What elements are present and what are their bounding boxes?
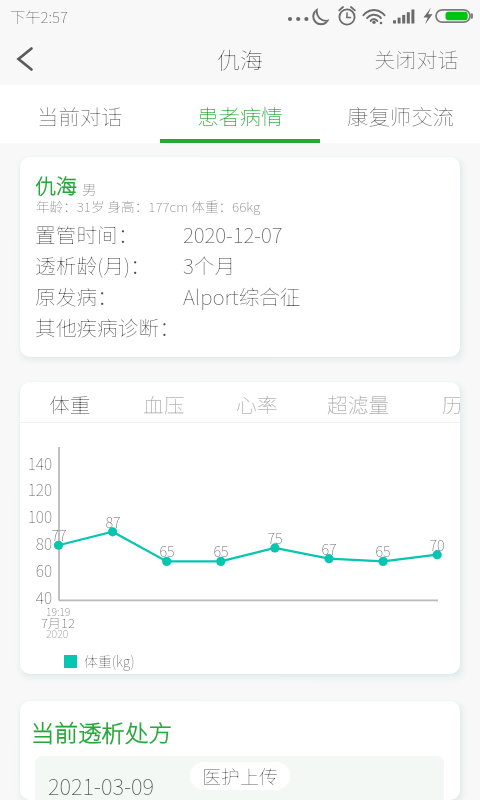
staticText: 2020-12-07 xyxy=(183,219,283,249)
button[interactable]: 医护上传 xyxy=(190,762,290,790)
staticText: 7月12 xyxy=(41,613,75,632)
staticText: 年龄：31岁 身高：177cm 体重：66kg xyxy=(36,196,261,216)
staticText: 19:19 xyxy=(46,604,71,619)
staticText: 3个月 xyxy=(183,250,236,280)
staticText: 140 xyxy=(20,452,52,474)
staticText: 2021-03-09 xyxy=(48,769,154,800)
staticText: 体重 xyxy=(49,389,91,419)
staticText: 87 xyxy=(100,511,126,532)
staticText: 80 xyxy=(20,532,52,554)
button[interactable]: 患者病情 xyxy=(160,85,320,143)
staticText: 其他疾病诊断： xyxy=(35,312,180,342)
staticText: 超滤量 xyxy=(327,389,390,419)
staticText: 67 xyxy=(316,538,342,559)
staticText: 体重(kg) xyxy=(84,651,135,671)
staticText: 70 xyxy=(424,534,450,555)
staticText: 康复师交流 xyxy=(347,100,454,131)
staticText: 2020 xyxy=(46,626,69,641)
staticText: 当前透析处方 xyxy=(31,715,172,749)
staticText: Alport综合征 xyxy=(183,281,301,311)
staticText: 40 xyxy=(20,586,52,608)
staticText: 心率 xyxy=(236,389,278,419)
staticText: 65 xyxy=(154,540,180,561)
staticText: 120 xyxy=(20,478,52,500)
staticText: 血压 xyxy=(143,389,185,419)
staticText: 医护上传 xyxy=(202,762,279,790)
staticText: 77 xyxy=(46,524,72,545)
button[interactable]: Back xyxy=(0,32,50,85)
staticText: 原发病： xyxy=(35,281,118,311)
button[interactable]: 当前对话 xyxy=(0,85,160,143)
button[interactable]: 关闭对话 xyxy=(360,32,480,85)
staticText: 60 xyxy=(20,559,52,581)
staticText: 患者病情 xyxy=(197,100,283,131)
staticText: 仇海 xyxy=(35,170,77,200)
staticText: 透析龄(月)： xyxy=(35,250,151,280)
staticText: 75 xyxy=(262,527,288,548)
staticText: 置管时间： xyxy=(35,219,139,249)
staticText: 男 xyxy=(82,178,97,199)
staticText: 当前对话 xyxy=(37,100,123,131)
staticText: 65 xyxy=(208,540,234,561)
staticText: 下午2:57 xyxy=(10,5,69,27)
button[interactable]: 康复师交流 xyxy=(320,85,480,143)
staticText: 100 xyxy=(20,505,52,527)
staticText: 65 xyxy=(370,540,396,561)
staticText: 仇海 xyxy=(217,42,263,75)
staticText: 历 xyxy=(442,389,460,419)
staticText: 关闭对话 xyxy=(374,43,459,74)
